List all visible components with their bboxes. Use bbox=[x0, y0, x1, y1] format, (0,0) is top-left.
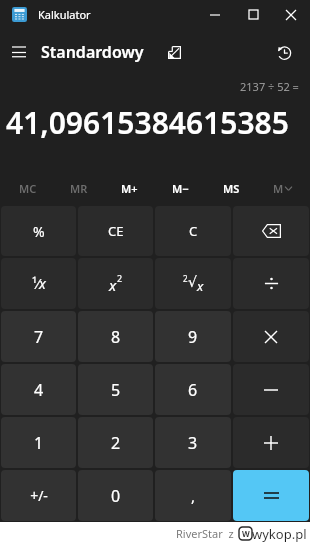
staticText: MR bbox=[70, 181, 88, 196]
button[interactable]: 7 bbox=[1, 311, 76, 362]
button[interactable]: Close bbox=[272, 0, 310, 29]
button[interactable]: History bbox=[264, 32, 304, 72]
button[interactable]: Minimize bbox=[196, 0, 234, 29]
staticText: Standardowy bbox=[41, 41, 144, 63]
button[interactable]: x bbox=[78, 258, 153, 309]
staticText: 2 bbox=[183, 273, 188, 284]
button[interactable]: Maximize bbox=[234, 0, 272, 29]
staticText: x bbox=[197, 277, 204, 295]
button[interactable]: Keep on top bbox=[158, 32, 190, 72]
staticText: 5 bbox=[111, 379, 121, 401]
button[interactable]: 4 bbox=[1, 364, 76, 415]
button[interactable]: Menu bbox=[0, 32, 38, 72]
button[interactable]: Backspace bbox=[233, 206, 309, 256]
staticText: ¹⁄ bbox=[32, 274, 39, 293]
staticText: x bbox=[109, 275, 117, 295]
button[interactable]: MR bbox=[53, 172, 104, 205]
button[interactable]: 1 bbox=[1, 417, 76, 468]
button[interactable]: Equals bbox=[233, 470, 309, 521]
button[interactable]: MS bbox=[206, 172, 257, 205]
button[interactable]: 5 bbox=[78, 364, 153, 415]
button[interactable]: M− bbox=[155, 172, 206, 205]
staticText: 41,09615384615385 bbox=[6, 102, 289, 143]
button[interactable]: 2 bbox=[155, 258, 231, 309]
button[interactable]: Minus bbox=[233, 364, 309, 415]
button[interactable]: ¹⁄ bbox=[1, 258, 76, 309]
staticText: W bbox=[242, 528, 250, 539]
button[interactable]: 9 bbox=[155, 311, 231, 362]
staticText: 1 bbox=[34, 432, 44, 454]
staticText: 3 bbox=[188, 432, 198, 454]
staticText: , bbox=[191, 486, 196, 506]
button[interactable]: CE bbox=[78, 206, 153, 256]
staticText: M− bbox=[172, 181, 189, 196]
button[interactable]: Plus minus bbox=[1, 470, 76, 521]
button[interactable]: % bbox=[1, 206, 76, 256]
staticText: MC bbox=[19, 181, 37, 196]
button[interactable]: 2 bbox=[78, 417, 153, 468]
staticText: C bbox=[189, 222, 198, 240]
button[interactable]: 3 bbox=[155, 417, 231, 468]
button[interactable]: M+ bbox=[104, 172, 155, 205]
staticText: +/- bbox=[30, 486, 48, 505]
staticText: 7 bbox=[34, 326, 44, 348]
staticText: RiverStar z bbox=[176, 526, 234, 541]
button[interactable]: , bbox=[155, 470, 231, 521]
staticText: 6 bbox=[188, 379, 198, 401]
staticText: MS bbox=[223, 181, 240, 196]
staticText: Kalkulator bbox=[38, 7, 91, 22]
staticText: x bbox=[39, 274, 46, 293]
button[interactable]: MC bbox=[2, 172, 53, 205]
staticText: M bbox=[273, 181, 284, 196]
staticText: 2 bbox=[111, 432, 121, 454]
staticText: 9 bbox=[188, 326, 198, 348]
staticText: M+ bbox=[121, 181, 138, 196]
button[interactable]: Multiply bbox=[233, 311, 309, 362]
staticText: √ bbox=[188, 274, 197, 290]
button[interactable]: C bbox=[155, 206, 231, 256]
button[interactable]: Plus bbox=[233, 417, 309, 468]
staticText: 4 bbox=[34, 379, 44, 401]
staticText: 2137 ÷ 52 = bbox=[240, 79, 299, 94]
staticText: 0 bbox=[111, 485, 121, 507]
staticText: CE bbox=[108, 222, 124, 240]
staticText: wykop.pl bbox=[252, 525, 307, 543]
button[interactable]: Divide bbox=[233, 258, 309, 309]
staticText: 2 bbox=[117, 272, 123, 284]
button[interactable]: 6 bbox=[155, 364, 231, 415]
button[interactable]: M bbox=[257, 172, 308, 205]
staticText: 8 bbox=[111, 326, 121, 348]
button[interactable]: 8 bbox=[78, 311, 153, 362]
button[interactable]: 0 bbox=[78, 470, 153, 521]
staticText: % bbox=[33, 222, 45, 241]
